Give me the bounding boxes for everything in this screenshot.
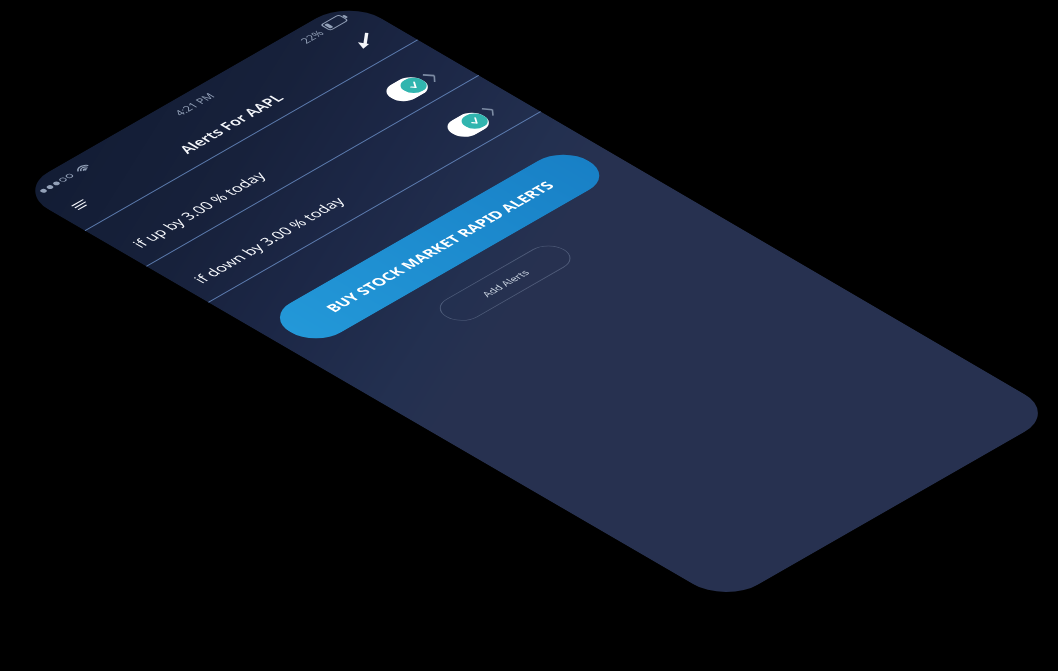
button[interactable] — [0, 74, 360, 140]
button[interactable]: Back — [314, 31, 346, 63]
staticText: if down by 3.00 % today — [14, 172, 170, 191]
staticText: if up by 3.00 % today — [14, 106, 150, 125]
button[interactable] — [0, 140, 360, 208]
staticText: BUY STOCK MARKET RAPID ALERTS — [59, 270, 298, 289]
staticText: Alerts For AAPL — [60, 43, 300, 62]
button[interactable]: BUY STOCK MARKET RAPID ALERTS — [17, 252, 340, 307]
staticText: 22% — [288, 8, 322, 22]
